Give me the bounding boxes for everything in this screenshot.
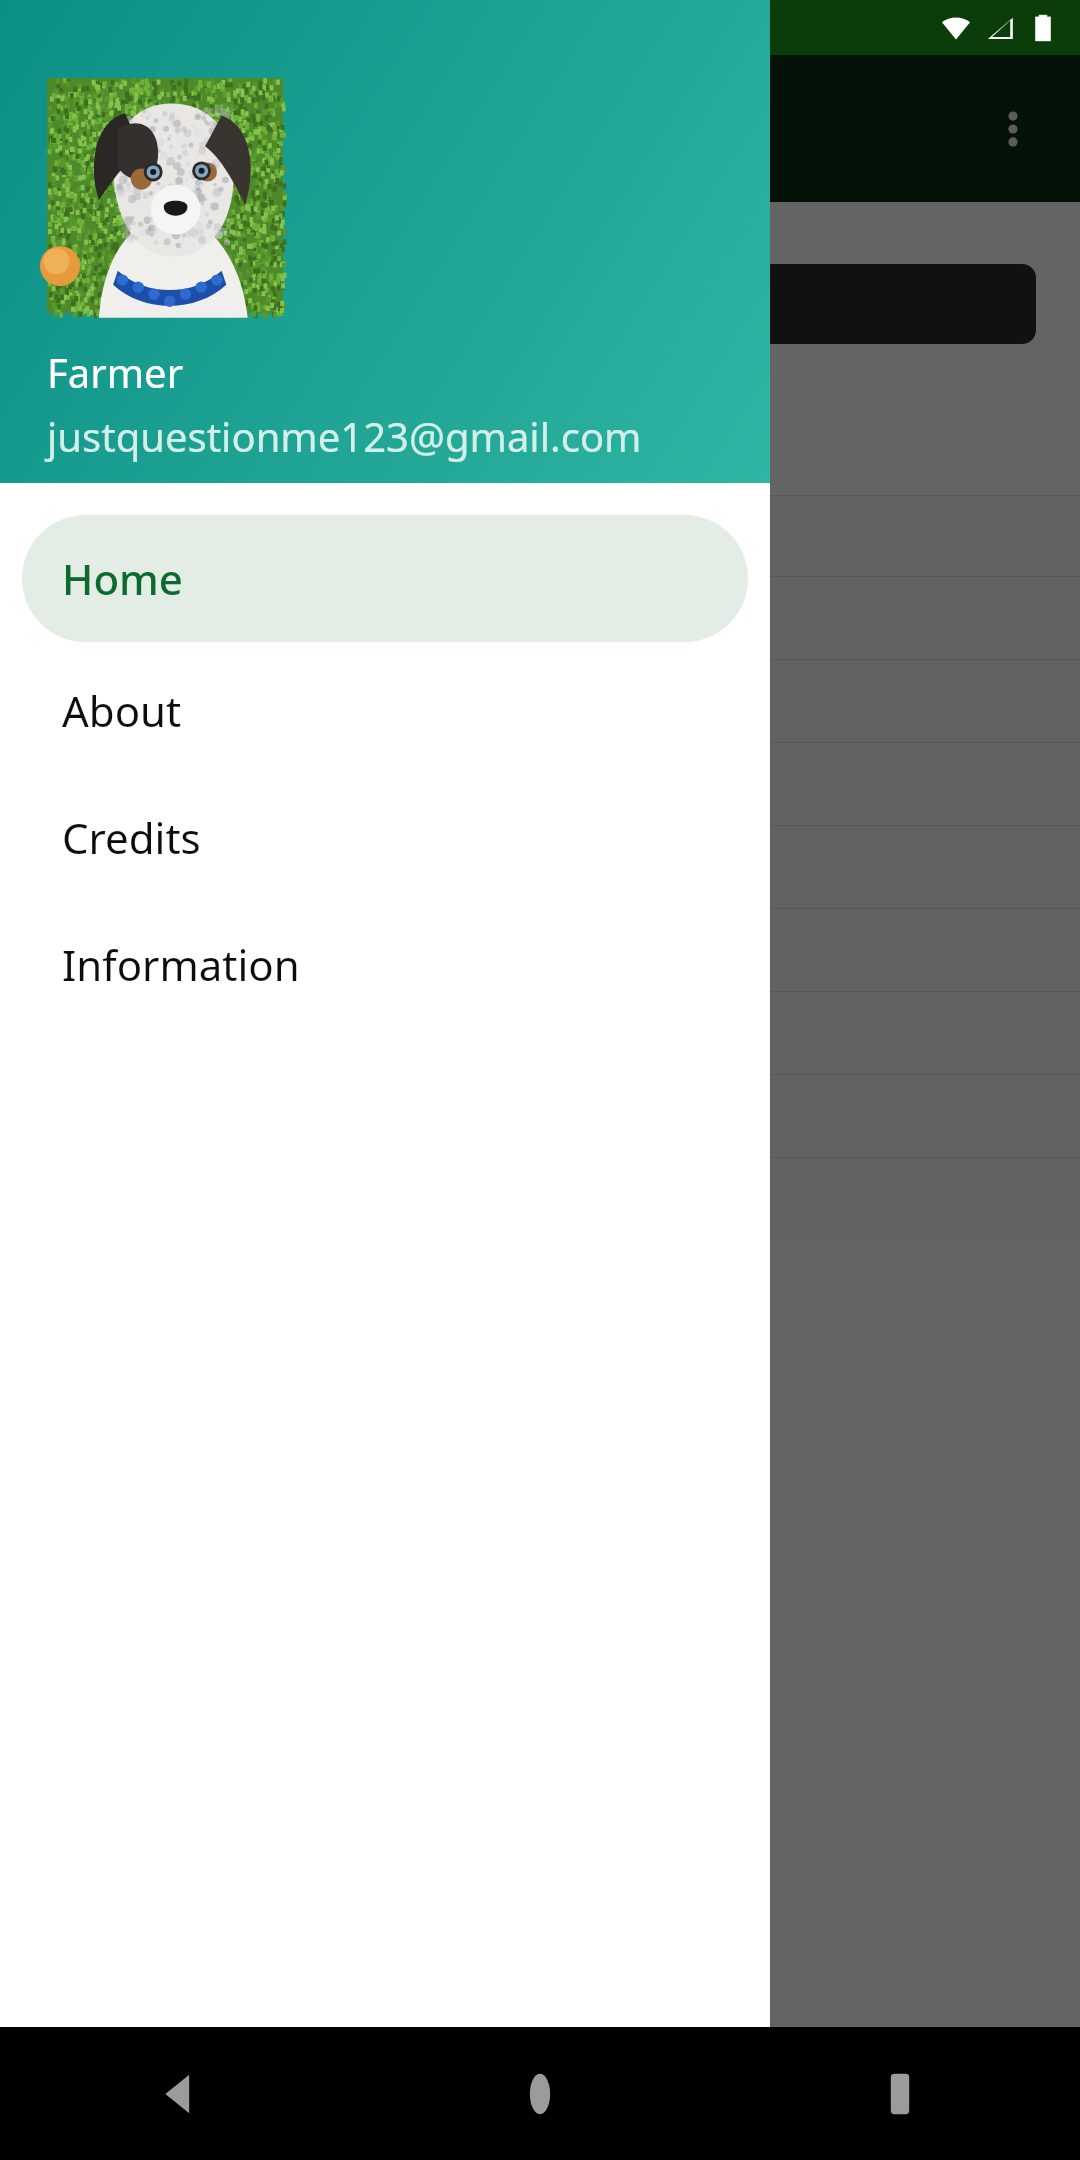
button[interactable]	[0, 55, 1080, 2027]
button[interactable]: Home	[22, 515, 748, 642]
button[interactable]	[0, 743, 1080, 825]
button[interactable]: About	[22, 647, 748, 774]
button[interactable]	[0, 992, 1080, 1074]
button[interactable]: Credits	[22, 774, 748, 901]
button[interactable]: Add	[120, 264, 1036, 344]
button[interactable]	[0, 660, 1080, 742]
staticText: Credits	[62, 809, 201, 866]
staticText: Information	[62, 936, 300, 993]
button[interactable]	[0, 1075, 1080, 1157]
button[interactable]	[0, 909, 1080, 991]
button[interactable]: Information	[22, 901, 748, 1028]
button[interactable]	[0, 1158, 1080, 1240]
staticText: About	[62, 682, 182, 739]
button[interactable]: Recent apps	[720, 2027, 1080, 2160]
button[interactable]: Farmer	[0, 0, 770, 483]
staticText: Farmer	[47, 345, 184, 399]
staticText: Home	[62, 550, 183, 607]
staticText: justquestionme123@gmail.com	[47, 409, 642, 463]
button[interactable]	[0, 826, 1080, 908]
button[interactable]: Location	[0, 496, 1080, 576]
staticText: Location	[430, 509, 591, 563]
button[interactable]: Home	[360, 2027, 720, 2160]
staticText: Setting	[440, 591, 574, 645]
button[interactable]: Back	[0, 2027, 360, 2160]
staticText: Count: 5	[400, 404, 566, 461]
button[interactable]: Setting	[0, 577, 1080, 659]
button[interactable]: More options	[968, 84, 1058, 174]
